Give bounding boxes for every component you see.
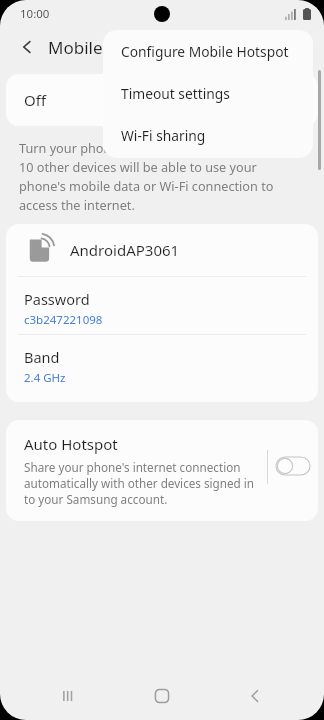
button[interactable]: Wi-Fi sharing: [103, 114, 313, 156]
staticText: Timeout settings: [121, 84, 230, 103]
button[interactable]: Band: [6, 335, 318, 392]
staticText: 2.4 GHz: [24, 370, 66, 386]
staticText: Auto Hotspot: [24, 434, 118, 454]
button[interactable]: Password: [6, 277, 318, 334]
staticText: Off: [24, 90, 47, 110]
button[interactable]: Configure Mobile Hotspot: [103, 30, 313, 72]
button[interactable]: AndroidAP3061: [6, 224, 318, 276]
staticText: Band: [24, 347, 60, 367]
staticText: Share your phone's internet connection a…: [24, 459, 259, 507]
staticText: Configure Mobile Hotspot: [121, 42, 289, 61]
staticText: Mobile Hotspot: [48, 36, 171, 59]
button[interactable]: Timeout settings: [103, 72, 313, 114]
button[interactable]: Auto Hotspot toggle: [268, 434, 318, 498]
button[interactable]: Back: [10, 30, 44, 64]
staticText: Password: [24, 289, 90, 309]
button[interactable]: Recents: [45, 672, 93, 720]
staticText: c3b247221098: [24, 312, 103, 328]
staticText: 10:00: [20, 6, 50, 22]
button[interactable]: Auto Hotspot: [6, 434, 267, 507]
button[interactable]: Off: [6, 74, 318, 126]
button[interactable]: Back: [231, 672, 279, 720]
staticText: Turn your phone into a Wi-Fi access poin…: [19, 139, 305, 214]
staticText: AndroidAP3061: [70, 240, 180, 260]
staticText: Wi-Fi sharing: [121, 126, 206, 145]
button[interactable]: Home: [138, 672, 186, 720]
